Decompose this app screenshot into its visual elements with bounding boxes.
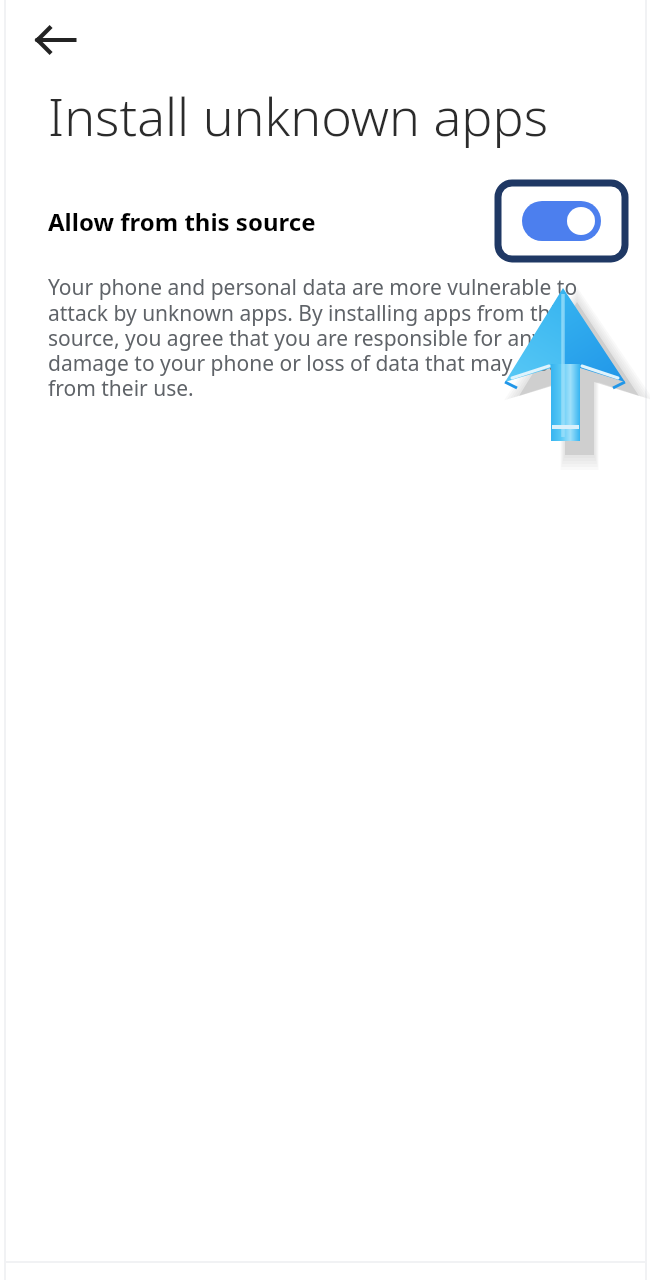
button[interactable]: Allow from this source toggle	[522, 201, 601, 241]
staticText: Your phone and personal data are more vu…	[48, 273, 606, 402]
staticText: Allow from this source	[48, 205, 316, 238]
staticText: Install unknown apps	[48, 80, 548, 151]
button[interactable]: Allow from this source	[0, 175, 650, 267]
button[interactable]: Back	[26, 10, 86, 70]
